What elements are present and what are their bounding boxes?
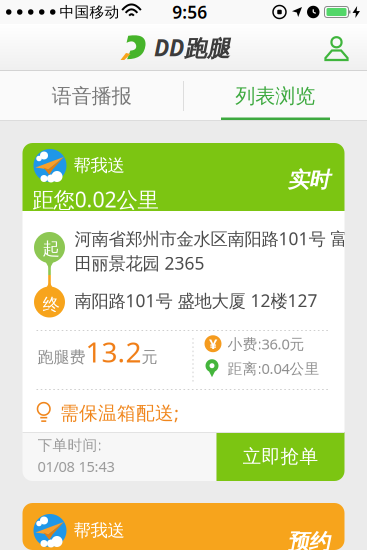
staticText: 跑腿费 <box>37 347 85 367</box>
staticText: 预约 <box>287 529 329 550</box>
staticText: 元 <box>141 347 157 367</box>
staticText: 终 <box>42 294 59 315</box>
staticText: 帮我送 <box>73 155 124 176</box>
staticText: 需保温箱配送; <box>60 400 179 425</box>
staticText: 下单时间: <box>37 435 101 454</box>
staticText: 实时 <box>287 167 329 193</box>
button[interactable]: 立即抢单 <box>216 432 344 481</box>
staticText: ¥ <box>209 334 217 353</box>
button[interactable]: 帮我送 <box>22 143 344 481</box>
staticText: 帮我送 <box>73 520 124 541</box>
staticText: 01/08 15:43 <box>37 456 114 476</box>
staticText: 13.2 <box>85 333 141 370</box>
staticText: 小费:36.0元 <box>227 334 304 353</box>
button[interactable]: 个人中心 <box>325 35 367 60</box>
button[interactable]: 语音播报 <box>0 71 183 121</box>
staticText: 9:56 <box>172 0 207 23</box>
staticText: 南阳路101号 盛地大厦 12楼127 <box>74 289 317 312</box>
staticText: DD跑腿 <box>154 32 230 63</box>
staticText: 起 <box>42 238 59 259</box>
staticText: 语音播报 <box>52 84 132 108</box>
staticText: 距离:0.04公里 <box>227 358 319 378</box>
staticText: 河南省郑州市金水区南阳路101号 富 田丽景花园 2365 <box>74 227 347 274</box>
button[interactable]: 列表浏览 <box>183 71 367 121</box>
staticText: 距您0.02公里 <box>32 185 158 213</box>
staticText: 列表浏览 <box>235 84 315 108</box>
staticText: 中国移动 <box>59 3 119 21</box>
staticText: 立即抢单 <box>242 445 318 468</box>
button[interactable]: 帮我送 <box>22 503 344 550</box>
